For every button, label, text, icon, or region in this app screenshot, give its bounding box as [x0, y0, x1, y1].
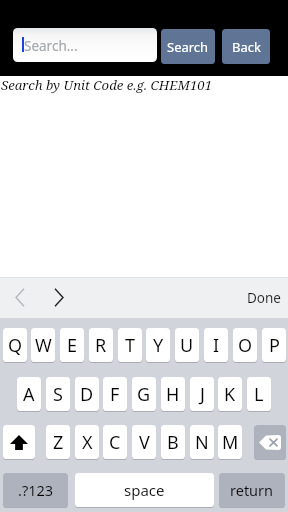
staticText: E	[67, 333, 78, 358]
button[interactable]: I	[204, 328, 228, 362]
button[interactable]: H	[161, 377, 185, 411]
button[interactable]: S	[46, 377, 70, 411]
staticText: Y	[153, 333, 164, 358]
staticText: Done	[247, 289, 281, 307]
button[interactable]: R	[89, 328, 113, 362]
button[interactable]: V	[132, 425, 156, 459]
button[interactable]: L	[247, 377, 271, 411]
button[interactable]: Y	[146, 328, 170, 362]
staticText: L	[254, 382, 264, 407]
button[interactable]: N	[190, 425, 214, 459]
button[interactable]: K	[218, 377, 242, 411]
staticText: G	[137, 382, 151, 407]
staticText: P	[269, 333, 280, 358]
staticText: Q	[8, 333, 23, 358]
button[interactable]: Backspace	[254, 425, 286, 459]
button[interactable]: P	[262, 328, 286, 362]
button[interactable]: E	[60, 328, 84, 362]
button[interactable]: C	[103, 425, 127, 459]
staticText: T	[125, 333, 136, 358]
button[interactable]: Search...	[13, 28, 157, 62]
staticText: space	[124, 480, 165, 500]
button[interactable]: U	[175, 328, 199, 362]
staticText: .?123	[18, 480, 54, 500]
button[interactable]: A	[17, 377, 41, 411]
button[interactable]: Next field	[49, 283, 69, 311]
button[interactable]: X	[75, 425, 99, 459]
staticText: N	[195, 430, 209, 455]
button[interactable]: Previous field	[10, 283, 30, 311]
button[interactable]: G	[132, 377, 156, 411]
button[interactable]: return	[219, 473, 285, 507]
button[interactable]: D	[75, 377, 99, 411]
staticText: return	[230, 480, 274, 500]
button[interactable]: Z	[46, 425, 70, 459]
button[interactable]: J	[190, 377, 214, 411]
staticText: K	[224, 382, 236, 407]
staticText: W	[35, 333, 52, 358]
staticText: Search	[167, 38, 209, 56]
button[interactable]: O	[233, 328, 257, 362]
staticText: J	[200, 382, 205, 407]
button[interactable]: F	[103, 377, 127, 411]
button[interactable]: M	[218, 425, 242, 459]
staticText: Back	[232, 38, 261, 56]
button[interactable]: Back	[222, 29, 270, 64]
staticText: C	[109, 430, 121, 455]
button[interactable]: Shift	[3, 425, 35, 459]
button[interactable]: B	[161, 425, 185, 459]
button[interactable]: Done	[240, 283, 288, 313]
staticText: O	[238, 333, 253, 358]
staticText: A	[23, 382, 35, 407]
staticText: F	[110, 382, 120, 407]
staticText: S	[53, 382, 63, 407]
staticText: H	[166, 382, 180, 407]
staticText: X	[82, 430, 93, 455]
button[interactable]: .?123	[3, 473, 68, 507]
button[interactable]: space	[75, 473, 214, 507]
button[interactable]: Search	[161, 29, 215, 64]
staticText: M	[222, 430, 239, 455]
staticText: Search...	[24, 37, 78, 55]
staticText: Search by Unit Code e.g. CHEM101	[1, 76, 213, 94]
button[interactable]: Q	[3, 328, 27, 362]
button[interactable]: W	[31, 328, 55, 362]
staticText: D	[80, 382, 94, 407]
staticText: Z	[53, 430, 64, 455]
staticText: I	[213, 333, 220, 358]
staticText: V	[139, 430, 150, 455]
staticText: R	[95, 333, 107, 358]
staticText: B	[167, 430, 179, 455]
button[interactable]: T	[118, 328, 142, 362]
staticText: U	[180, 333, 194, 358]
